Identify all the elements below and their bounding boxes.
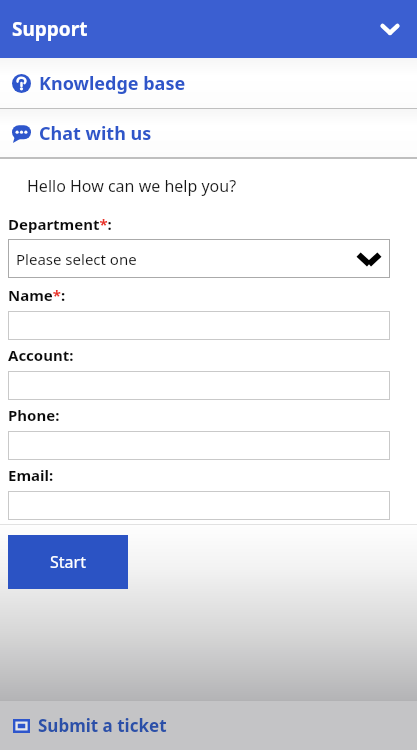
button[interactable]	[8, 311, 390, 340]
staticText: Phone:	[8, 405, 60, 425]
staticText: Submit a ticket	[38, 714, 167, 737]
staticText: Hello How can we help you?	[27, 175, 237, 197]
button[interactable]: Start	[8, 535, 128, 589]
button[interactable]	[8, 371, 390, 400]
button[interactable]: Please select one	[8, 239, 390, 278]
button[interactable]	[8, 491, 390, 520]
button[interactable]: Chat with us	[0, 109, 417, 157]
button[interactable]: Support	[0, 0, 417, 58]
staticText: Email:	[8, 465, 54, 485]
button[interactable]	[8, 431, 390, 460]
staticText: Department*:	[8, 214, 112, 234]
staticText: Support	[12, 16, 88, 42]
staticText: Chat with us	[39, 121, 152, 146]
button[interactable]: Collapse support panel	[373, 12, 407, 46]
staticText: Account:	[8, 345, 74, 365]
staticText: Please select one	[16, 249, 137, 269]
staticText: Start	[50, 551, 86, 573]
button[interactable]: Submit a ticket	[0, 701, 417, 750]
staticText: Name*:	[8, 285, 66, 305]
button[interactable]: Knowledge base	[0, 58, 417, 108]
staticText: Knowledge base	[39, 71, 186, 96]
